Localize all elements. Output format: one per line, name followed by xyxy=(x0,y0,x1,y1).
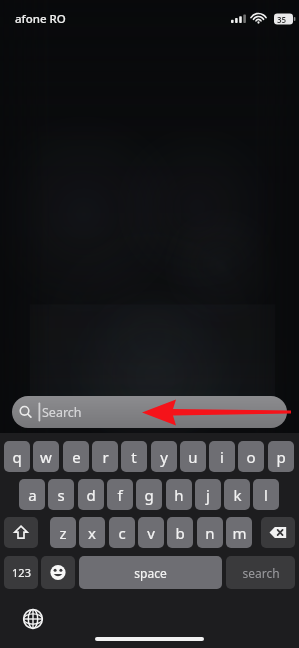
button[interactable]: s xyxy=(48,479,74,510)
staticText: i xyxy=(220,447,224,467)
button[interactable]: i xyxy=(209,441,235,472)
button[interactable]: j xyxy=(195,479,221,510)
button[interactable]: Backspace xyxy=(261,517,295,548)
staticText: v xyxy=(147,523,155,543)
button[interactable]: l xyxy=(253,479,279,510)
button[interactable]: Shift xyxy=(4,517,38,548)
button[interactable]: o xyxy=(238,441,264,472)
staticText: a xyxy=(28,485,37,505)
button[interactable]: c xyxy=(109,517,135,548)
button[interactable]: r xyxy=(92,441,118,472)
staticText: j xyxy=(206,485,210,505)
button[interactable]: h xyxy=(166,479,192,510)
staticText: x xyxy=(88,523,96,543)
button[interactable]: Change keyboard language xyxy=(18,604,48,634)
staticText: z xyxy=(59,523,67,543)
staticText: c xyxy=(118,523,126,543)
button[interactable]: m xyxy=(226,517,252,548)
staticText: l xyxy=(264,485,268,505)
button[interactable]: f xyxy=(107,479,133,510)
staticText: search xyxy=(242,565,280,581)
staticText: Search xyxy=(42,404,82,421)
button[interactable]: t xyxy=(121,441,147,472)
button[interactable]: e xyxy=(63,441,89,472)
staticText: 35 xyxy=(277,14,287,25)
staticText: n xyxy=(205,523,215,543)
staticText: 123 xyxy=(12,565,31,580)
staticText: f xyxy=(117,485,123,505)
staticText: p xyxy=(276,447,286,467)
staticText: m xyxy=(232,523,247,543)
button[interactable]: Emoji xyxy=(41,556,75,589)
button[interactable]: q xyxy=(4,441,30,472)
staticText: g xyxy=(144,485,154,505)
staticText: space xyxy=(134,565,167,581)
staticText: r xyxy=(102,447,109,467)
button[interactable]: Search xyxy=(12,396,287,428)
button[interactable]: a xyxy=(19,479,45,510)
staticText: q xyxy=(12,447,22,467)
button[interactable]: d xyxy=(78,479,104,510)
button[interactable]: z xyxy=(50,517,76,548)
staticText: w xyxy=(40,447,52,467)
staticText: y xyxy=(160,447,168,467)
staticText: u xyxy=(188,447,198,467)
button[interactable]: x xyxy=(79,517,105,548)
staticText: d xyxy=(86,485,96,505)
button[interactable]: search xyxy=(226,556,295,589)
staticText: t xyxy=(131,447,137,467)
staticText: b xyxy=(175,523,185,543)
button[interactable]: b xyxy=(167,517,193,548)
button[interactable]: space xyxy=(79,556,222,589)
staticText: h xyxy=(174,485,184,505)
staticText: o xyxy=(246,447,256,467)
button[interactable]: u xyxy=(180,441,206,472)
button[interactable]: p xyxy=(268,441,294,472)
staticText: e xyxy=(72,447,81,467)
button[interactable]: w xyxy=(33,441,59,472)
button[interactable]: k xyxy=(224,479,250,510)
button[interactable]: y xyxy=(151,441,177,472)
button[interactable]: n xyxy=(197,517,223,548)
staticText: k xyxy=(233,485,242,505)
staticText: afone RO xyxy=(15,11,66,27)
staticText: s xyxy=(57,485,65,505)
button[interactable]: v xyxy=(138,517,164,548)
button[interactable]: 123 xyxy=(4,556,38,589)
button[interactable]: g xyxy=(136,479,162,510)
